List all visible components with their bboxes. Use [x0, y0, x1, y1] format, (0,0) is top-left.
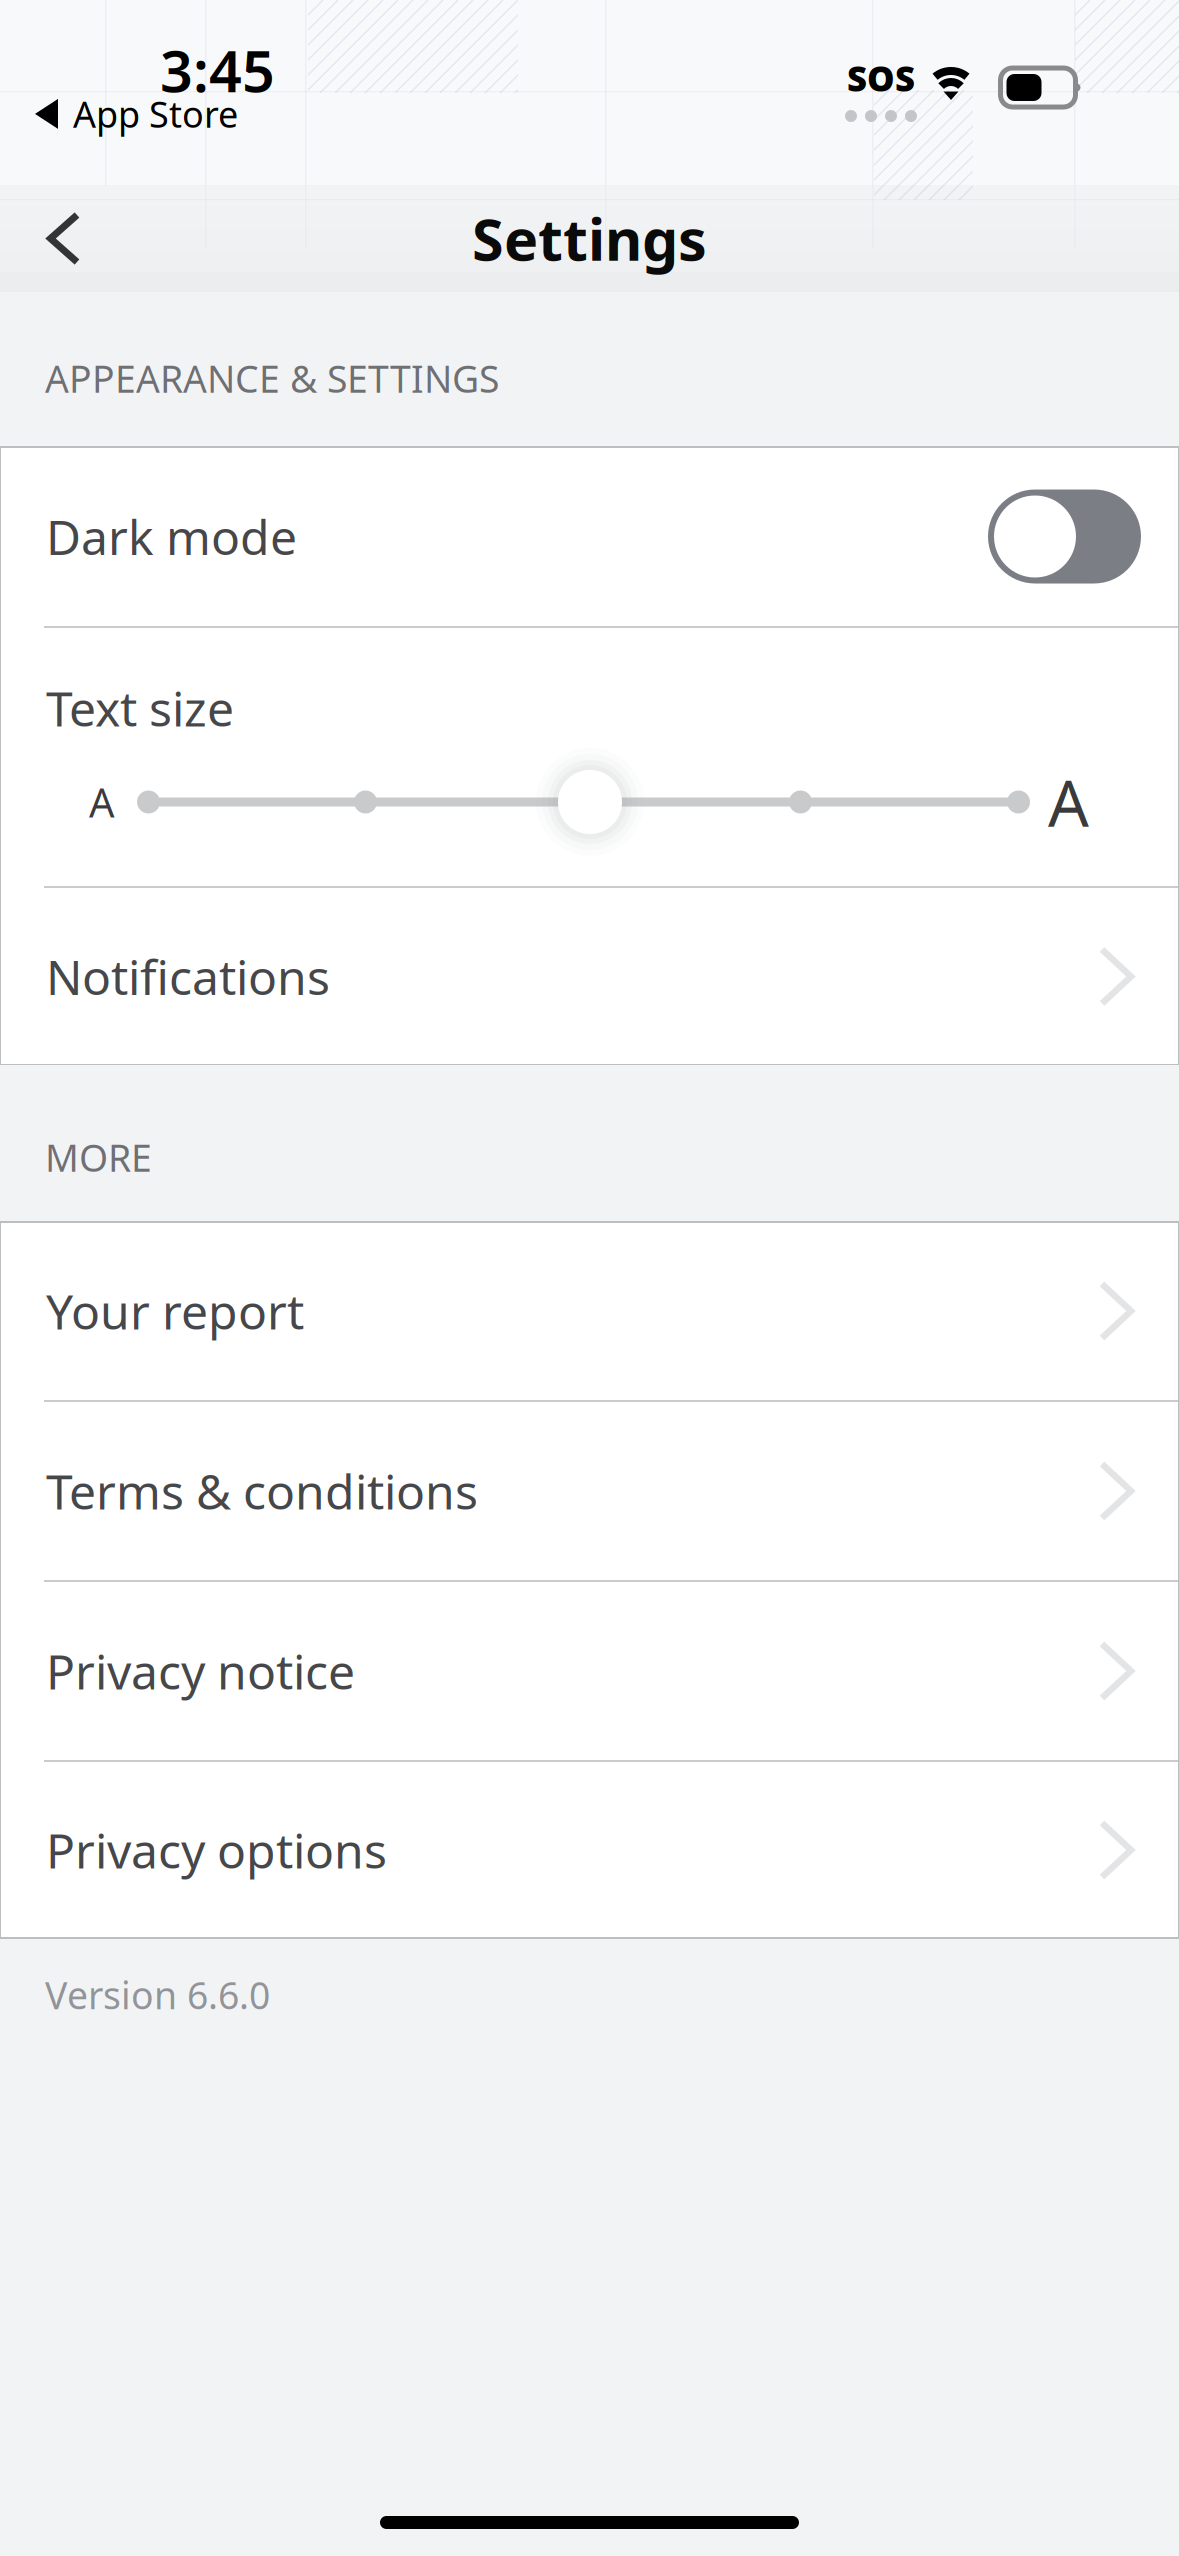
staticText: SOS — [847, 55, 915, 101]
button[interactable]: Dark mode — [0, 447, 1179, 626]
staticText: Text size — [46, 676, 234, 740]
staticText: Dark mode — [46, 505, 297, 568]
staticText: Privacy options — [46, 1818, 387, 1882]
button[interactable]: Text size — [0, 628, 1179, 886]
staticText: APPEARANCE & SETTINGS — [45, 353, 499, 403]
button[interactable]: Terms & conditions — [0, 1402, 1179, 1580]
staticText: Terms & conditions — [46, 1459, 478, 1523]
button[interactable]: Privacy notice — [0, 1582, 1179, 1760]
staticText: Version 6.6.0 — [45, 1970, 270, 2020]
button[interactable]: Notifications — [0, 888, 1179, 1065]
staticText: Notifications — [46, 945, 330, 1008]
staticText: A — [89, 775, 115, 828]
staticText: 3:45 — [160, 32, 275, 108]
staticText: Privacy notice — [46, 1639, 355, 1703]
staticText: Your report — [46, 1279, 304, 1343]
staticText: A — [1048, 759, 1089, 844]
staticText: App Store — [73, 90, 238, 138]
staticText: Settings — [472, 200, 707, 276]
button[interactable]: Privacy options — [0, 1762, 1179, 1938]
button[interactable]: App Store — [34, 90, 238, 138]
staticText: MORE — [45, 1132, 152, 1182]
button[interactable]: Back — [0, 185, 128, 292]
button[interactable]: Your report — [0, 1222, 1179, 1400]
